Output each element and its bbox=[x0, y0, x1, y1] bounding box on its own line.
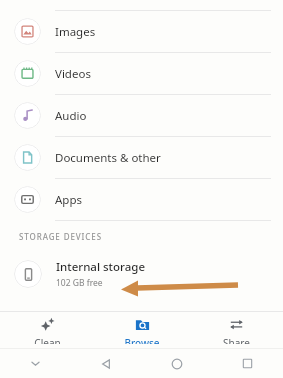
staticText: Images bbox=[55, 24, 96, 40]
button[interactable]: Internal storage bbox=[0, 252, 283, 296]
button[interactable]: Recent apps bbox=[212, 349, 283, 378]
staticText: Apps bbox=[55, 192, 83, 208]
staticText: Videos bbox=[55, 66, 91, 82]
button[interactable]: Apps bbox=[0, 179, 283, 220]
button[interactable]: Hide keyboard bbox=[0, 349, 70, 378]
button[interactable]: Browse bbox=[97, 312, 187, 348]
button[interactable]: Home bbox=[141, 349, 212, 378]
button[interactable]: Clean bbox=[2, 312, 92, 348]
staticText: Internal storage bbox=[56, 259, 145, 275]
button[interactable]: Documents & other bbox=[0, 137, 283, 178]
button[interactable]: Audio bbox=[0, 95, 283, 136]
staticText: Audio bbox=[55, 108, 87, 124]
button[interactable]: Images bbox=[0, 11, 283, 52]
staticText: Browse bbox=[124, 336, 160, 344]
button[interactable]: Back bbox=[70, 349, 141, 378]
staticText: STORAGE DEVICES bbox=[19, 231, 102, 242]
staticText: Documents & other bbox=[55, 150, 161, 166]
button[interactable]: Share bbox=[191, 312, 281, 348]
staticText: Clean bbox=[34, 336, 61, 344]
staticText: Share bbox=[223, 336, 250, 344]
button[interactable]: Videos bbox=[0, 53, 283, 94]
staticText: 102 GB free bbox=[56, 277, 103, 289]
